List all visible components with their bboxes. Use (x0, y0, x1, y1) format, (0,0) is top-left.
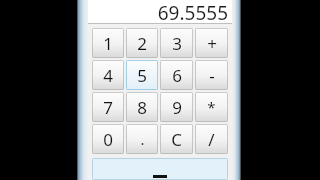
staticText: 8 (137, 96, 147, 119)
staticText: . (140, 129, 145, 149)
button[interactable]: - (195, 60, 228, 90)
staticText: / (208, 128, 215, 151)
staticText: 6 (172, 64, 182, 87)
button[interactable]: Equals (92, 158, 228, 180)
button[interactable]: / (195, 124, 228, 154)
staticText: 9 (172, 96, 182, 119)
staticText: 69.5555 (157, 0, 228, 23)
button[interactable]: C (160, 124, 193, 154)
staticText: C (171, 128, 182, 151)
button[interactable]: 4 (92, 60, 124, 90)
button[interactable]: * (195, 92, 228, 122)
staticText: 1 (103, 32, 113, 55)
staticText: 0 (103, 128, 113, 151)
button[interactable]: 2 (126, 28, 158, 58)
button[interactable]: 5 (126, 60, 158, 90)
staticText: 2 (137, 32, 147, 55)
button[interactable]: 6 (160, 60, 193, 90)
button[interactable]: 7 (92, 92, 124, 122)
staticText: + (207, 32, 217, 55)
staticText: 4 (103, 64, 113, 87)
button[interactable]: 3 (160, 28, 193, 58)
staticText: 5 (137, 64, 147, 87)
staticText: * (207, 97, 216, 117)
staticText: - (209, 64, 215, 87)
button[interactable]: 0 (92, 124, 124, 154)
staticText: 3 (172, 32, 182, 55)
staticText: 7 (103, 96, 113, 119)
button[interactable]: 1 (92, 28, 124, 58)
button[interactable]: 8 (126, 92, 158, 122)
button[interactable]: + (195, 28, 228, 58)
button[interactable]: . (126, 124, 158, 154)
button[interactable]: 9 (160, 92, 193, 122)
